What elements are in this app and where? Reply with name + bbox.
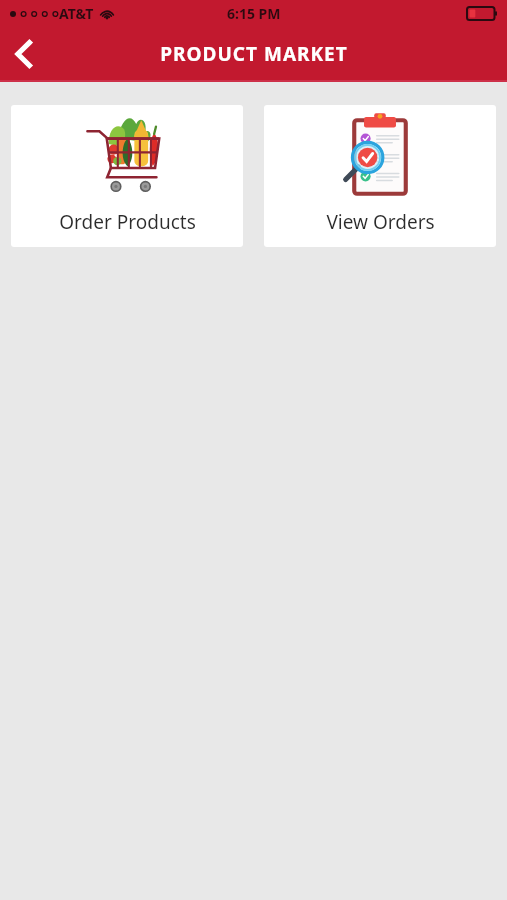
button[interactable]: View Orders — [264, 105, 496, 247]
staticText: 6:15 PM — [227, 4, 281, 23]
staticText: PRODUCT MARKET — [160, 41, 348, 67]
staticText: Order Products — [59, 209, 196, 235]
staticText: AT&T — [59, 4, 94, 23]
button[interactable]: Back — [0, 30, 48, 78]
staticText: View Orders — [326, 209, 435, 235]
button[interactable]: Order Products — [11, 105, 243, 247]
